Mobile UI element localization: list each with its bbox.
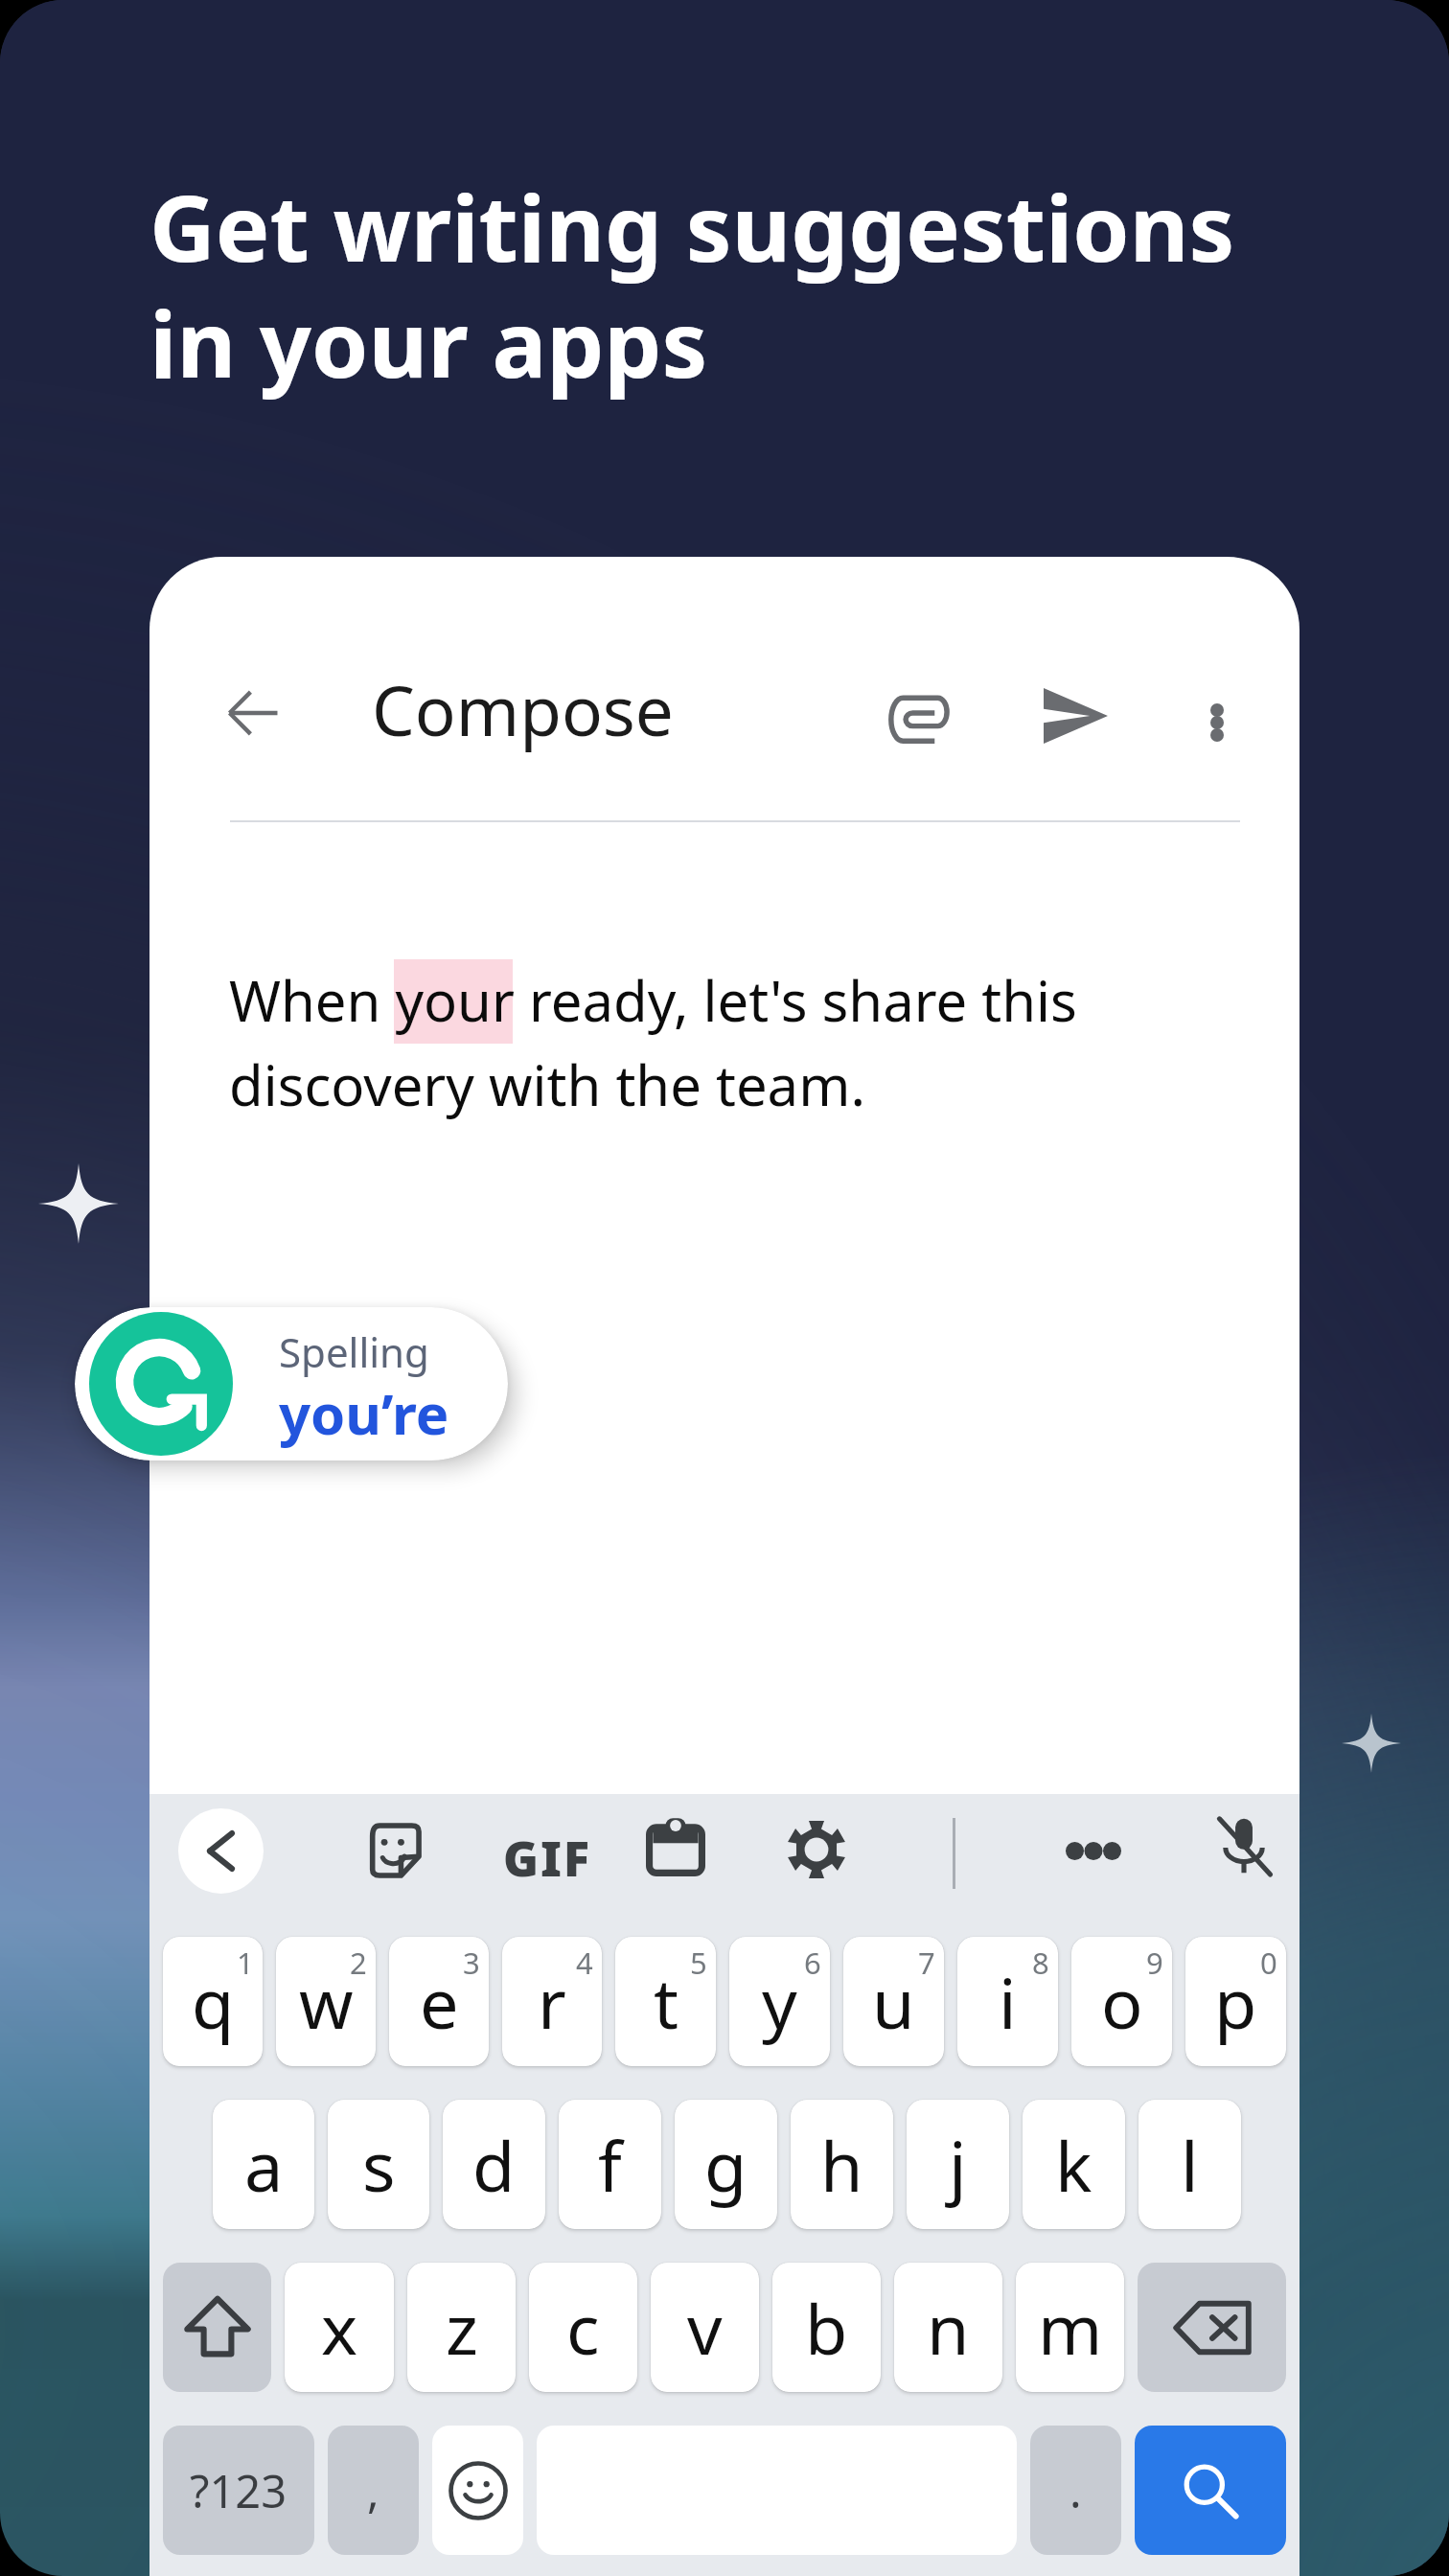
- button[interactable]: More options: [1066, 1842, 1121, 1860]
- button[interactable]: Emoji: [432, 2426, 523, 2555]
- button[interactable]: d: [443, 2100, 545, 2229]
- button[interactable]: Back: [213, 673, 293, 753]
- staticText: l: [1181, 2118, 1199, 2212]
- staticText: x: [321, 2281, 358, 2375]
- staticText: w: [299, 1955, 354, 2049]
- staticText: d: [472, 2118, 516, 2212]
- staticText: Get writing suggestions in your apps: [149, 164, 1235, 404]
- button[interactable]: .: [1030, 2426, 1121, 2555]
- staticText: b: [805, 2281, 848, 2375]
- button[interactable]: z: [407, 2263, 516, 2392]
- button[interactable]: q: [163, 1937, 263, 2066]
- button[interactable]: p: [1185, 1937, 1286, 2066]
- button[interactable]: n: [894, 2263, 1002, 2392]
- staticText: z: [446, 2281, 478, 2375]
- staticText: y: [762, 1955, 797, 2049]
- staticText: a: [244, 2118, 284, 2212]
- staticText: 0: [1260, 1943, 1277, 1983]
- button[interactable]: More options: [1183, 688, 1252, 757]
- button[interactable]: a: [213, 2100, 314, 2229]
- staticText: 1: [237, 1943, 254, 1983]
- button[interactable]: i: [957, 1937, 1058, 2066]
- staticText: 4: [576, 1943, 593, 1983]
- staticText: o: [1101, 1955, 1143, 2049]
- button[interactable]: Spelling: [75, 1307, 508, 1460]
- button[interactable]: GIF: [503, 1826, 591, 1891]
- staticText: h: [820, 2118, 863, 2212]
- staticText: you’re: [279, 1375, 449, 1451]
- button[interactable]: r: [502, 1937, 602, 2066]
- button[interactable]: v: [651, 2263, 759, 2392]
- button[interactable]: Backspace: [1138, 2263, 1286, 2392]
- staticText: f: [598, 2118, 622, 2212]
- staticText: Compose: [372, 663, 674, 756]
- staticText: g: [704, 2118, 747, 2212]
- button[interactable]: Voice input off: [1213, 1815, 1275, 1876]
- button[interactable]: h: [791, 2100, 893, 2229]
- staticText: ,: [367, 2460, 379, 2521]
- button[interactable]: Shift: [163, 2263, 271, 2392]
- staticText: t: [654, 1955, 678, 2049]
- button[interactable]: l: [1138, 2100, 1241, 2229]
- button[interactable]: g: [675, 2100, 777, 2229]
- staticText: 5: [690, 1943, 707, 1983]
- button[interactable]: Stickers: [364, 1821, 424, 1880]
- button[interactable]: o: [1071, 1937, 1172, 2066]
- button[interactable]: Clipboard: [646, 1817, 705, 1876]
- staticText: j: [949, 2118, 967, 2212]
- staticText: c: [566, 2281, 600, 2375]
- button[interactable]: y: [729, 1937, 830, 2066]
- staticText: 3: [463, 1943, 480, 1983]
- button[interactable]: ,: [328, 2426, 419, 2555]
- staticText: When your ready, let's share this discov…: [229, 962, 1077, 1122]
- staticText: 8: [1032, 1943, 1049, 1983]
- staticText: ?123: [190, 2460, 287, 2521]
- button[interactable]: k: [1023, 2100, 1125, 2229]
- button[interactable]: u: [843, 1937, 944, 2066]
- staticText: k: [1055, 2118, 1092, 2212]
- staticText: q: [192, 1955, 235, 2049]
- staticText: p: [1214, 1955, 1257, 2049]
- staticText: s: [362, 2118, 396, 2212]
- button[interactable]: Back: [178, 1808, 264, 1894]
- staticText: i: [999, 1955, 1017, 2049]
- button[interactable]: Settings: [787, 1820, 846, 1879]
- staticText: 9: [1146, 1943, 1163, 1983]
- button[interactable]: w: [276, 1937, 376, 2066]
- button[interactable]: t: [615, 1937, 716, 2066]
- staticText: 7: [918, 1943, 935, 1983]
- button[interactable]: m: [1016, 2263, 1124, 2392]
- button[interactable]: c: [529, 2263, 637, 2392]
- button[interactable]: f: [559, 2100, 661, 2229]
- button[interactable]: b: [772, 2263, 881, 2392]
- staticText: r: [538, 1955, 566, 2049]
- button[interactable]: Attach file: [884, 684, 953, 753]
- staticText: Spelling: [279, 1324, 429, 1379]
- button[interactable]: e: [389, 1937, 489, 2066]
- staticText: 6: [804, 1943, 821, 1983]
- staticText: 2: [350, 1943, 367, 1983]
- button[interactable]: x: [285, 2263, 394, 2392]
- staticText: e: [420, 1955, 459, 2049]
- staticText: n: [927, 2281, 970, 2375]
- button[interactable]: j: [907, 2100, 1009, 2229]
- button[interactable]: s: [328, 2100, 429, 2229]
- button[interactable]: Send: [1039, 679, 1112, 752]
- button[interactable]: ?123: [163, 2426, 314, 2555]
- staticText: m: [1038, 2281, 1103, 2375]
- staticText: u: [872, 1955, 915, 2049]
- staticText: .: [1069, 2460, 1082, 2521]
- button[interactable]: Search: [1135, 2426, 1286, 2555]
- staticText: v: [687, 2281, 723, 2375]
- staticText: GIF: [503, 1826, 591, 1891]
